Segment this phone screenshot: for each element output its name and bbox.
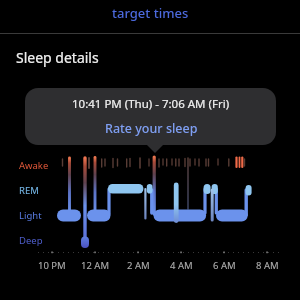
- staticText: Awake: [19, 159, 49, 172]
- staticText: Deep: [19, 234, 43, 247]
- button[interactable]: target times: [0, 0, 300, 25]
- staticText: 10 PM: [38, 259, 66, 272]
- staticText: 4 AM: [170, 259, 193, 272]
- staticText: 6 AM: [213, 259, 236, 272]
- staticText: 12 AM: [81, 259, 110, 272]
- staticText: Light: [19, 209, 42, 222]
- staticText: 8 AM: [256, 259, 279, 272]
- staticText: 2 AM: [127, 259, 150, 272]
- staticText: 10:41 PM (Thu) - 7:06 AM (Fri): [72, 96, 230, 112]
- staticText: Rate your sleep: [105, 120, 198, 137]
- staticText: REM: [19, 184, 39, 197]
- staticText: target times: [112, 4, 189, 22]
- staticText: Sleep details: [16, 48, 99, 67]
- button[interactable]: 10:41 PM (Thu) - 7:06 AM (Fri): [25, 88, 276, 145]
